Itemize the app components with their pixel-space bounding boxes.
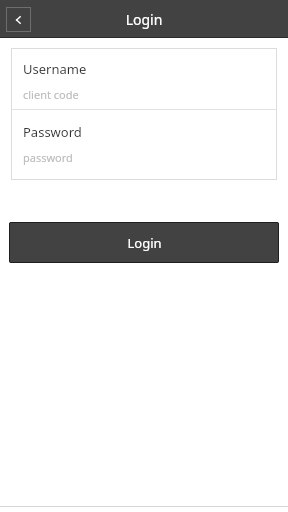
staticText: Login	[0, 10, 288, 29]
button[interactable]: Login	[9, 222, 279, 263]
staticText: password	[23, 150, 73, 165]
button[interactable]: Password	[11, 110, 277, 178]
button[interactable]: Back	[6, 7, 31, 32]
staticText: Username	[23, 60, 87, 78]
staticText: Password	[23, 123, 82, 141]
button[interactable]: Username	[11, 48, 277, 109]
staticText: client code	[23, 87, 79, 102]
staticText: Login	[127, 234, 162, 252]
